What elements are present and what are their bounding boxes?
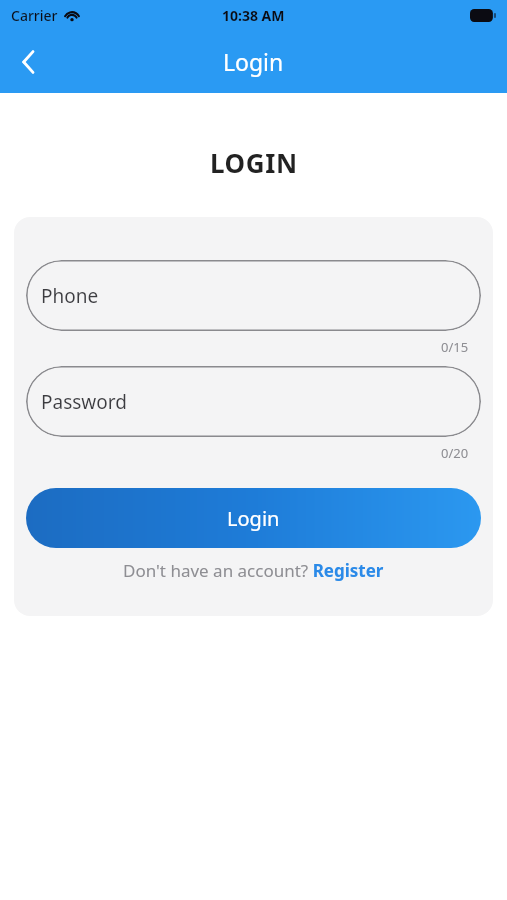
staticText: Phone <box>41 283 99 309</box>
staticText: 0/15 <box>441 338 469 356</box>
staticText: Carrier <box>11 6 58 25</box>
button[interactable]: Password <box>26 366 481 437</box>
staticText: Login <box>223 46 284 77</box>
button[interactable]: Back <box>0 34 56 90</box>
staticText: Don't have an account? Register <box>123 559 384 582</box>
button[interactable]: Phone <box>26 260 481 331</box>
button[interactable]: Login <box>26 488 481 548</box>
button[interactable]: Don't have an account? Register <box>123 559 384 582</box>
staticText: LOGIN <box>210 145 298 180</box>
staticText: Password <box>41 389 127 415</box>
staticText: 0/20 <box>441 444 469 462</box>
staticText: 10:38 AM <box>222 6 285 25</box>
staticText: Login <box>227 505 280 532</box>
